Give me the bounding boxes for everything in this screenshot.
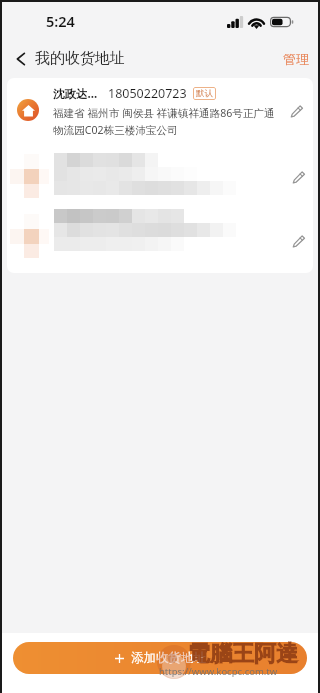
button[interactable]: Edit (7, 200, 313, 258)
button[interactable]: 管理 (269, 46, 320, 72)
other: Edit (292, 171, 305, 184)
staticText: https://www.kocpc.com.tw (159, 665, 278, 678)
staticText: 沈政达... (53, 86, 98, 102)
staticText: 我的收货地址 (35, 49, 125, 68)
staticText: 福建省 福州市 闽侯县 祥谦镇祥通路86号正广通物流园C02栋三楼沛宝公司 (53, 106, 280, 137)
button[interactable]: Back (0, 45, 133, 72)
button[interactable]: Edit (286, 229, 310, 253)
other: Back (15, 53, 27, 65)
button[interactable]: Edit (286, 165, 310, 189)
staticText: 5:24 (46, 11, 75, 31)
staticText: 默认 (196, 88, 213, 99)
staticText: 電腦王阿達 (188, 640, 298, 668)
staticText: 添加收货地址 (131, 650, 206, 666)
button[interactable]: 添加收货地址 (13, 642, 307, 674)
other: Edit (290, 105, 303, 118)
staticText: 管理 (283, 51, 309, 67)
other: Edit (292, 235, 305, 248)
button[interactable]: 沈政达... (7, 78, 313, 142)
staticText: 18050220723 (108, 85, 187, 102)
button[interactable]: Edit (7, 142, 313, 200)
button[interactable]: Edit (284, 99, 308, 123)
